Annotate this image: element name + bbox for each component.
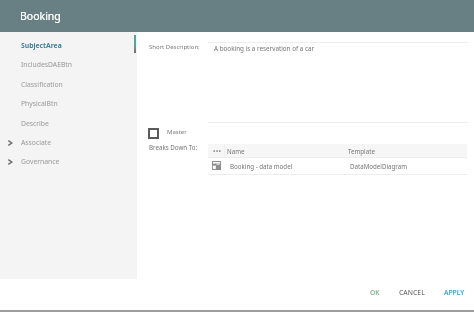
staticText: SubjectArea [21,41,62,50]
button[interactable]: APPLY [436,284,473,300]
button[interactable]: Master [148,125,187,139]
staticText: Template [348,147,375,155]
staticText: Booking [20,9,61,23]
staticText: APPLY [444,288,465,297]
staticText: Booking - data model [230,162,293,170]
staticText: Governance [21,157,60,166]
staticText: PhysicalBtn [21,99,58,108]
staticText: Name [227,147,245,155]
staticText: Master [167,128,187,136]
staticText: CANCEL [399,288,425,297]
button[interactable]: IncludesDAEBtn [0,55,137,74]
staticText: OK [370,288,380,297]
staticText: Short Description: [149,43,200,51]
other: Expand Associate [7,140,13,146]
button[interactable]: Expand Associate [0,133,137,152]
button[interactable]: SubjectArea [0,36,137,55]
staticText: Describe [21,119,49,128]
button[interactable]: Classification [0,75,137,94]
button[interactable]: Booking - data model [208,158,467,174]
other: Expand Governance [7,159,13,165]
button[interactable]: PhysicalBtn [0,94,137,113]
other: More options [213,148,221,154]
staticText: Associate [21,138,52,147]
staticText: DataModelDiagram [350,162,408,170]
staticText: Breaks Down To: [149,143,198,151]
button[interactable]: Expand Governance [0,152,137,171]
button[interactable]: OK [362,284,388,300]
button[interactable]: CANCEL [391,284,433,300]
button[interactable]: Describe [0,114,137,133]
staticText: A booking is a reservation of a car [214,44,315,53]
staticText: Classification [21,80,63,89]
staticText: IncludesDAEBtn [21,60,73,69]
